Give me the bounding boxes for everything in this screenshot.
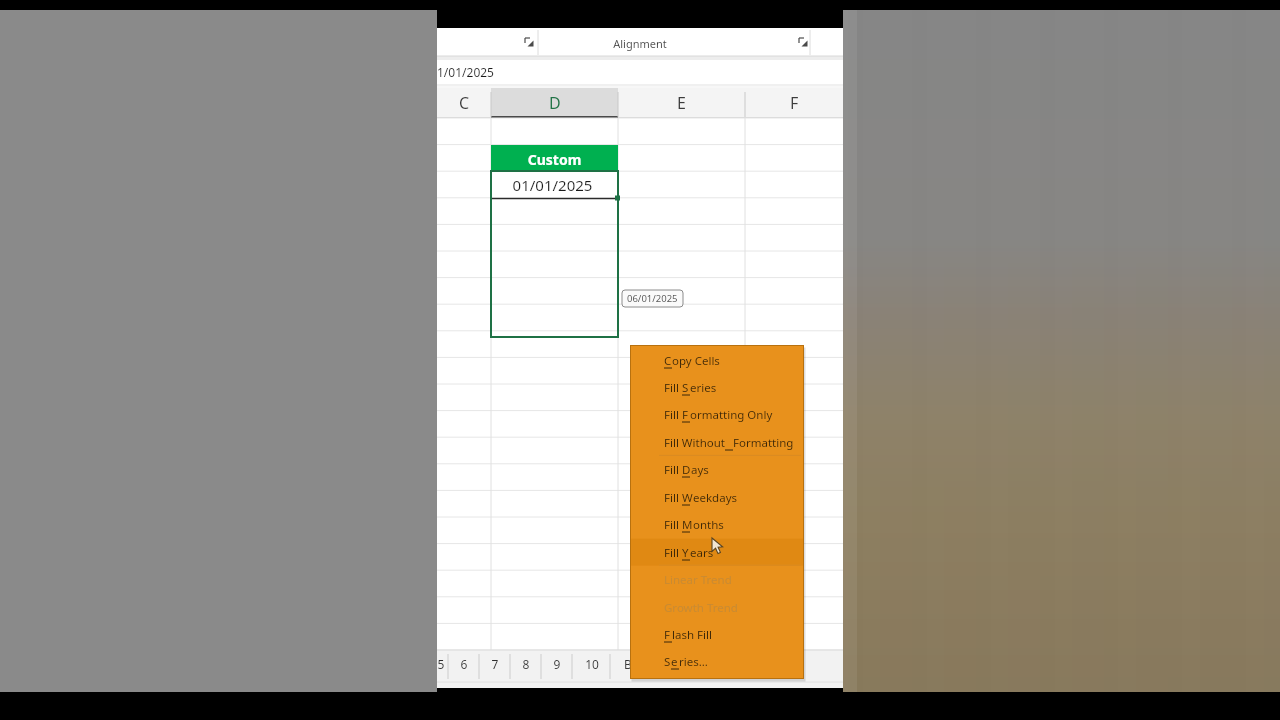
- staticText: 9: [546, 656, 568, 675]
- button: Growth Trend: [631, 594, 803, 621]
- staticText: Y: [682, 545, 689, 561]
- button[interactable]: Fill: [631, 456, 803, 483]
- staticText: D: [549, 92, 561, 114]
- staticText: C: [664, 353, 672, 369]
- button[interactable]: F: [631, 621, 803, 648]
- button[interactable]: Fill: [631, 484, 803, 511]
- staticText: F: [790, 92, 799, 114]
- staticText: Fill: [664, 380, 682, 396]
- staticText: Fill: [664, 517, 682, 533]
- button[interactable]: Font settings: [524, 37, 535, 48]
- staticText: ears: [690, 545, 714, 561]
- button[interactable]: Alignment settings: [798, 37, 809, 48]
- staticText: 5: [430, 656, 452, 675]
- staticText: S: [682, 380, 689, 396]
- staticText: 10: [581, 656, 603, 675]
- staticText: ries...: [679, 654, 708, 670]
- staticText: ormatting Only: [690, 407, 773, 423]
- button[interactable]: Fill: [631, 401, 803, 428]
- staticText: Fill: [664, 545, 682, 561]
- staticText: Growth Trend: [664, 600, 738, 616]
- button[interactable]: Fill: [631, 374, 803, 401]
- staticText: D: [682, 462, 691, 478]
- staticText: M: [682, 517, 693, 533]
- staticText: opy Cells: [672, 353, 720, 369]
- staticText: Fill: [664, 407, 682, 423]
- button[interactable]: D: [491, 88, 618, 118]
- button[interactable]: Fill Without: [631, 429, 803, 456]
- staticText: C: [459, 92, 470, 114]
- staticText: 06/01/2025: [627, 292, 678, 305]
- staticText: e: [671, 654, 678, 670]
- button: Linear Trend: [631, 566, 803, 593]
- button[interactable]: Fill: [631, 539, 803, 566]
- staticText: Linear Trend: [664, 572, 732, 588]
- staticText: F: [664, 627, 670, 643]
- staticText: Formatting: [733, 435, 794, 451]
- staticText: W: [682, 490, 693, 506]
- button[interactable]: Fill: [631, 511, 803, 538]
- staticText: 01/01/2025: [491, 175, 614, 199]
- staticText: F: [682, 407, 688, 423]
- staticText: 7: [484, 656, 506, 675]
- staticText: Custom: [491, 150, 618, 172]
- button[interactable]: F: [745, 88, 843, 118]
- staticText: 6: [453, 656, 475, 675]
- staticText: onths: [693, 517, 724, 533]
- staticText: ays: [691, 462, 709, 478]
- button[interactable]: C: [631, 347, 803, 374]
- button[interactable]: C: [437, 88, 491, 118]
- staticText: eekdays: [693, 490, 738, 506]
- staticText: 1/01/2025: [437, 64, 557, 83]
- staticText: S: [664, 654, 671, 670]
- staticText: Fill: [664, 462, 682, 478]
- staticText: B: [617, 656, 639, 675]
- staticText: E: [677, 92, 686, 114]
- staticText: Alignment: [437, 36, 843, 54]
- staticText: [725, 435, 728, 451]
- staticText: eries: [690, 380, 717, 396]
- staticText: Fill Without: [664, 435, 725, 451]
- button[interactable]: S: [631, 648, 803, 675]
- button[interactable]: E: [618, 88, 745, 118]
- staticText: Fill: [664, 490, 682, 506]
- staticText: lash Fill: [672, 627, 712, 643]
- staticText: 8: [515, 656, 537, 675]
